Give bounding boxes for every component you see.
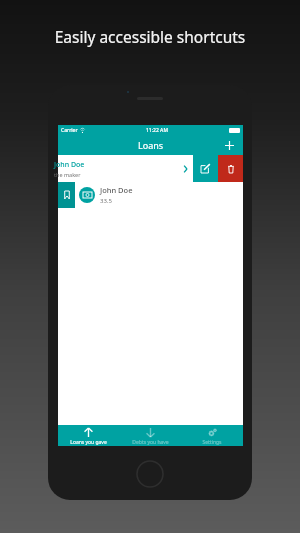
button[interactable]: John Doe <box>75 182 243 208</box>
button[interactable]: Delete <box>218 155 243 182</box>
staticText: John Doe <box>54 160 85 170</box>
staticText: Settings <box>202 439 222 446</box>
staticText: 33.5 <box>100 197 112 205</box>
staticText: Loans <box>138 139 164 151</box>
staticText: John Doe <box>100 185 133 195</box>
staticText: Debts you have <box>132 439 169 446</box>
button[interactable]: Home <box>136 460 164 488</box>
staticText: 11:22 AM <box>146 127 168 134</box>
staticText: Carrier <box>61 127 78 134</box>
button[interactable]: Bookmark <box>58 182 75 208</box>
button[interactable]: Debts you have <box>132 425 169 446</box>
button[interactable]: Add loan <box>221 137 237 153</box>
button[interactable]: John Doe <box>58 155 193 182</box>
staticText: Easily accessible shortcuts <box>0 26 300 47</box>
button[interactable]: Edit <box>193 155 218 182</box>
button[interactable]: Settings <box>202 425 222 446</box>
staticText: Loans you gave <box>70 439 107 446</box>
button[interactable]: Loans you gave <box>70 425 107 446</box>
staticText: the maker <box>54 171 81 178</box>
